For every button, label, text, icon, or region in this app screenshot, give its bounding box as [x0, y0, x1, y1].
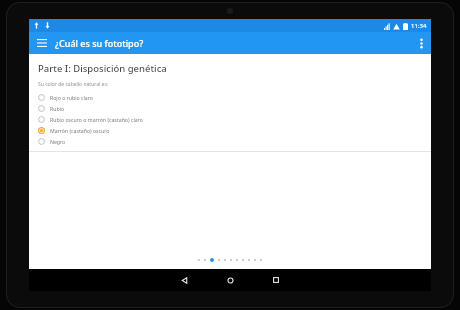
button[interactable]: Negro: [29, 136, 431, 147]
button[interactable]: Rubio: [29, 103, 431, 114]
button[interactable]: Marrón (castaño) oscuro: [29, 125, 431, 136]
staticText: Rubio oscuro o marrón (castaño) claro: [50, 116, 143, 123]
button[interactable]: Back: [161, 269, 207, 291]
button[interactable]: Rojo o rubio claro: [29, 92, 431, 103]
button[interactable]: Rubio oscuro o marrón (castaño) claro: [29, 114, 431, 125]
staticText: Marrón (castaño) oscuro: [50, 127, 110, 134]
staticText: Negro: [50, 138, 66, 145]
staticText: Su color de cabello natural es:: [38, 81, 109, 88]
staticText: 11:34: [411, 22, 427, 30]
staticText: ¿Cuál es su fototipo?: [55, 37, 411, 49]
button[interactable]: Open navigation drawer: [29, 32, 55, 54]
button[interactable]: Recent apps: [253, 269, 299, 291]
button[interactable]: Home: [207, 269, 253, 291]
staticText: Rojo o rubio claro: [50, 94, 93, 101]
button[interactable]: More options: [411, 32, 431, 54]
staticText: Parte I: Disposición genética: [38, 62, 167, 75]
staticText: Rubio: [50, 105, 65, 112]
